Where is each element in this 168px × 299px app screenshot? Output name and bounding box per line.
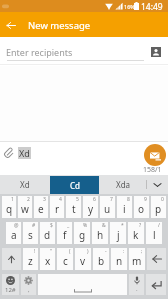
- button[interactable]: Xd: [0, 175, 50, 194]
- staticText: Cd: [70, 180, 80, 191]
- staticText: f: [63, 228, 67, 242]
- staticText: ;: [141, 248, 143, 255]
- staticText: v: [80, 254, 86, 268]
- button[interactable]: k: [128, 222, 144, 244]
- button[interactable]: Attach file: [0, 144, 18, 162]
- staticText: w: [21, 202, 29, 216]
- staticText: 5: [76, 196, 79, 203]
- staticText: 1: [11, 196, 14, 203]
- staticText: o: [138, 202, 145, 216]
- staticText: ?: [139, 222, 142, 229]
- staticText: m: [132, 254, 142, 268]
- button[interactable]: r: [50, 196, 64, 218]
- button[interactable]: e: [34, 196, 48, 218]
- staticText: @: [14, 222, 19, 229]
- button[interactable]: q: [2, 196, 16, 218]
- button[interactable]: h: [92, 222, 108, 244]
- staticText: q: [6, 202, 13, 216]
- staticText: 9: [144, 196, 147, 203]
- button[interactable]: Emoji and symbols: [2, 274, 19, 295]
- button[interactable]: b: [93, 248, 109, 270]
- staticText: 12#: [5, 286, 16, 294]
- button[interactable]: Voice input: [129, 274, 144, 295]
- button[interactable]: s: [23, 222, 38, 244]
- staticText: .: [136, 285, 138, 293]
- staticText: 158/1: [143, 165, 162, 175]
- staticText: y: [88, 202, 94, 216]
- staticText: *: [121, 222, 124, 229]
- staticText: Xda: [116, 179, 131, 190]
- button[interactable]: Backspace: [147, 248, 166, 270]
- button[interactable]: Cd: [50, 176, 99, 194]
- button[interactable]: w: [18, 196, 32, 218]
- button[interactable]: f: [57, 222, 72, 244]
- staticText: #: [32, 222, 36, 229]
- button[interactable]: g: [74, 222, 90, 244]
- staticText: 7: [110, 196, 113, 203]
- button[interactable]: i: [117, 196, 132, 218]
- button[interactable]: Back: [4, 18, 18, 32]
- button[interactable]: u: [100, 196, 115, 218]
- staticText: e: [38, 202, 44, 216]
- button[interactable]: More suggestions: [147, 175, 168, 194]
- button[interactable]: m: [129, 248, 145, 270]
- button[interactable]: v: [75, 248, 91, 270]
- staticText: New message: [28, 19, 91, 32]
- button[interactable]: x: [40, 248, 55, 270]
- button[interactable]: t: [66, 196, 81, 218]
- staticText: /: [158, 222, 160, 229]
- staticText: 4: [59, 196, 62, 203]
- staticText: n: [116, 254, 123, 268]
- staticText: Xd: [19, 147, 30, 159]
- staticText: d: [44, 228, 51, 242]
- staticText: a: [11, 228, 17, 242]
- button[interactable]: p: [151, 196, 166, 218]
- staticText: t: [72, 202, 76, 216]
- staticText: r: [55, 202, 60, 216]
- staticText: 3: [43, 196, 46, 203]
- button[interactable]: l: [146, 222, 162, 244]
- staticText: 8: [127, 196, 130, 203]
- button[interactable]: Enter: [146, 274, 166, 295]
- button[interactable]: n: [111, 248, 127, 270]
- button[interactable]: z: [23, 248, 38, 270]
- button[interactable]: Keyboard settings: [21, 274, 36, 295]
- staticText: i: [123, 202, 126, 216]
- button[interactable]: c: [57, 248, 73, 270]
- staticText: 2: [27, 196, 30, 203]
- staticText: u: [104, 202, 111, 216]
- staticText: ": [50, 248, 53, 255]
- staticText: ): [87, 248, 89, 255]
- staticText: $: [50, 222, 53, 229]
- button[interactable]: y: [83, 196, 98, 218]
- button[interactable]: Space: [38, 274, 127, 295]
- staticText: l: [153, 228, 156, 242]
- staticText: &: [102, 222, 106, 229]
- staticText: 0: [161, 196, 164, 203]
- button[interactable]: Xda: [99, 175, 147, 194]
- button[interactable]: Send message: [144, 144, 166, 166]
- staticText: 14:49: [141, 1, 163, 13]
- staticText: h: [97, 228, 104, 242]
- button[interactable]: Choose contact: [148, 44, 164, 60]
- button[interactable]: d: [40, 222, 55, 244]
- staticText: b: [98, 254, 105, 268]
- staticText: p: [155, 202, 162, 216]
- button[interactable]: o: [134, 196, 149, 218]
- staticText: g: [79, 228, 86, 242]
- button[interactable]: j: [110, 222, 126, 244]
- staticText: 16%: [124, 3, 135, 10]
- staticText: j: [117, 228, 120, 242]
- staticText: z: [28, 254, 33, 268]
- staticText: _: [67, 222, 70, 229]
- staticText: k: [133, 228, 139, 242]
- button[interactable]: Shift: [2, 248, 21, 270]
- staticText: c: [63, 254, 68, 268]
- staticText: %: [83, 222, 88, 229]
- staticText: x: [45, 254, 51, 268]
- staticText: Xd: [20, 179, 30, 190]
- button[interactable]: a: [6, 222, 21, 244]
- staticText: (: [69, 248, 71, 255]
- staticText: !: [34, 248, 36, 255]
- staticText: -: [105, 248, 107, 255]
